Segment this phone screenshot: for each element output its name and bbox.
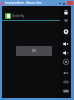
button[interactable]: Location <box>60 27 71 36</box>
button[interactable]: Back <box>60 68 71 77</box>
staticText: Butterfly <box>12 14 25 18</box>
button[interactable]: Lock <box>60 7 71 16</box>
button[interactable]: Rotate <box>60 15 71 24</box>
button[interactable]: Minimize <box>58 1 62 6</box>
button[interactable]: Maximize <box>62 1 66 6</box>
button[interactable]: Volume down <box>60 48 71 57</box>
staticText: OK <box>32 49 37 53</box>
button[interactable]: Screenshot <box>60 86 71 96</box>
button[interactable]: OK <box>16 46 52 56</box>
staticText: tmp/problem - Nexus One <box>5 1 42 5</box>
button[interactable]: Power <box>60 57 71 66</box>
button[interactable]: Overview <box>60 77 71 86</box>
button[interactable]: Volume up <box>60 39 71 48</box>
